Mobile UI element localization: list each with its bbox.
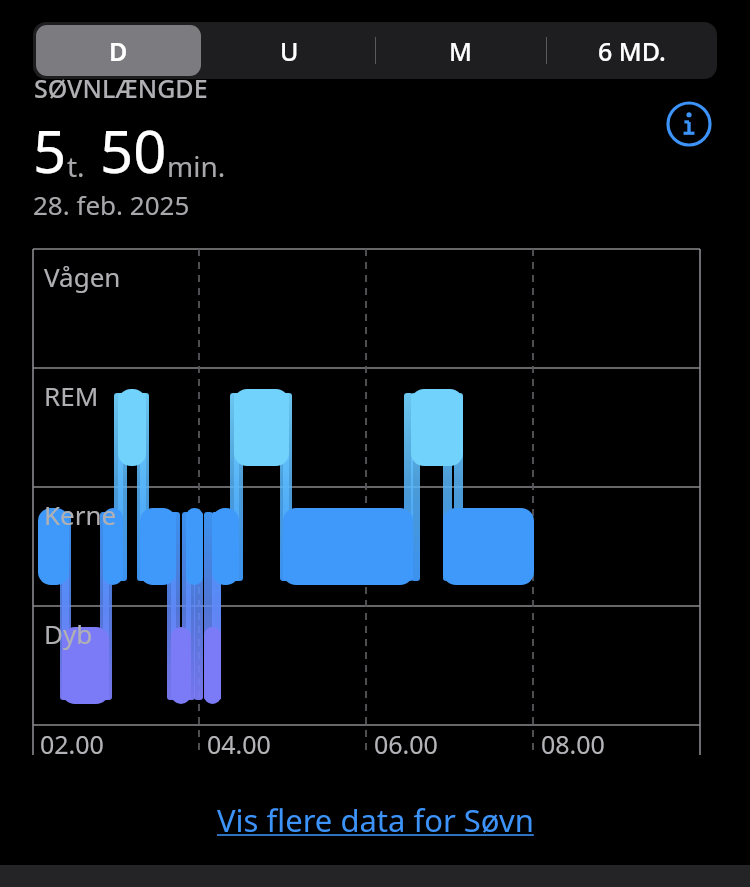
staticText: SØVNLÆNGDE — [34, 71, 208, 105]
button[interactable] — [36, 25, 201, 76]
button[interactable]: M — [375, 22, 546, 79]
button[interactable]: Vis flere data for Søvn — [0, 795, 750, 845]
button[interactable]: U — [204, 22, 375, 79]
staticText: U — [280, 34, 299, 68]
staticText: 06.00 — [374, 727, 438, 761]
staticText: M — [449, 34, 472, 68]
staticText: 6 MD. — [598, 34, 666, 68]
staticText: 5 — [33, 111, 67, 190]
staticText: Kerne — [44, 497, 117, 532]
staticText: 08.00 — [541, 727, 605, 761]
button[interactable]: 6 MD. — [546, 22, 717, 79]
staticText: 04.00 — [207, 727, 271, 761]
staticText: min. — [167, 147, 226, 185]
staticText: 02.00 — [40, 727, 104, 761]
button[interactable]: D — [33, 22, 204, 79]
staticText: D — [109, 34, 128, 68]
staticText: 28. feb. 2025 — [33, 187, 190, 222]
staticText: REM — [44, 378, 99, 413]
staticText: t. — [67, 147, 85, 185]
staticText: Dyb — [44, 616, 93, 651]
staticText: Vågen — [44, 259, 121, 294]
button[interactable]: Info om søvnlængde — [666, 101, 712, 147]
staticText: 50 — [85, 111, 167, 190]
staticText: Vis flere data for Søvn — [217, 799, 534, 841]
